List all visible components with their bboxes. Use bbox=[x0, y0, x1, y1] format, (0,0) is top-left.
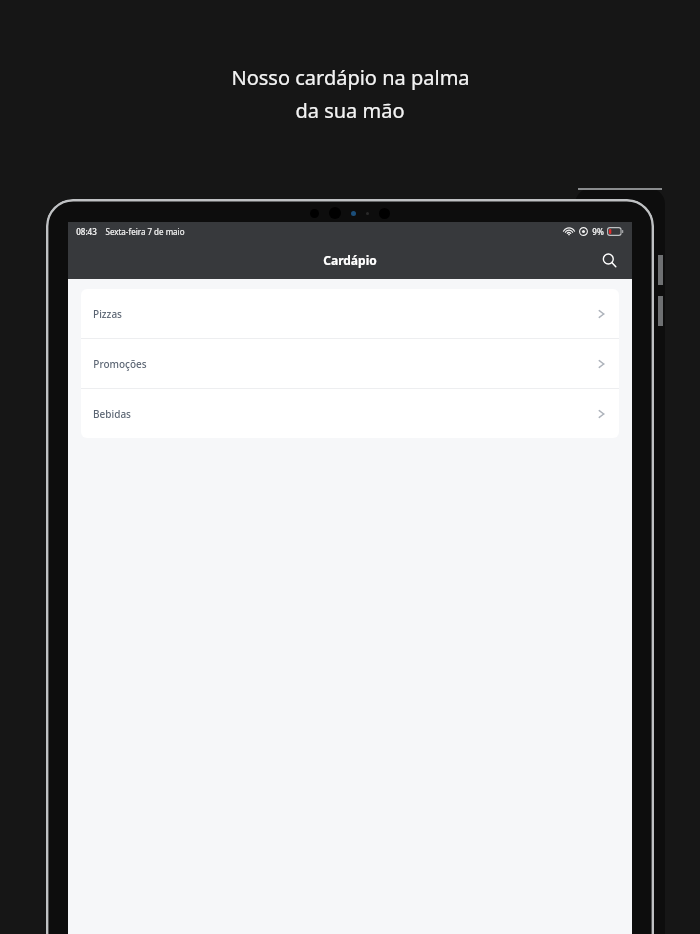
staticText: Nosso cardápio na palma bbox=[231, 64, 470, 91]
staticText: Sexta-feira 7 de maio bbox=[105, 226, 185, 237]
button[interactable]: Promoções bbox=[81, 339, 619, 388]
staticText: Bebidas bbox=[93, 407, 131, 421]
staticText: 08:43 bbox=[76, 226, 97, 237]
button[interactable]: Search bbox=[592, 243, 626, 277]
button[interactable]: Pizzas bbox=[81, 289, 619, 338]
button[interactable]: Bebidas bbox=[81, 389, 619, 438]
staticText: Promoções bbox=[93, 357, 147, 371]
staticText: da sua mão bbox=[295, 97, 405, 124]
staticText: 9% bbox=[592, 226, 604, 237]
staticText: Cardápio bbox=[323, 252, 377, 268]
staticText: Pizzas bbox=[93, 307, 122, 321]
